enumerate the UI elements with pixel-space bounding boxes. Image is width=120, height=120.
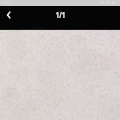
staticText: 1/1 <box>55 9 65 20</box>
button[interactable]: Back <box>0 7 16 23</box>
button[interactable]: Photo <box>0 30 120 120</box>
